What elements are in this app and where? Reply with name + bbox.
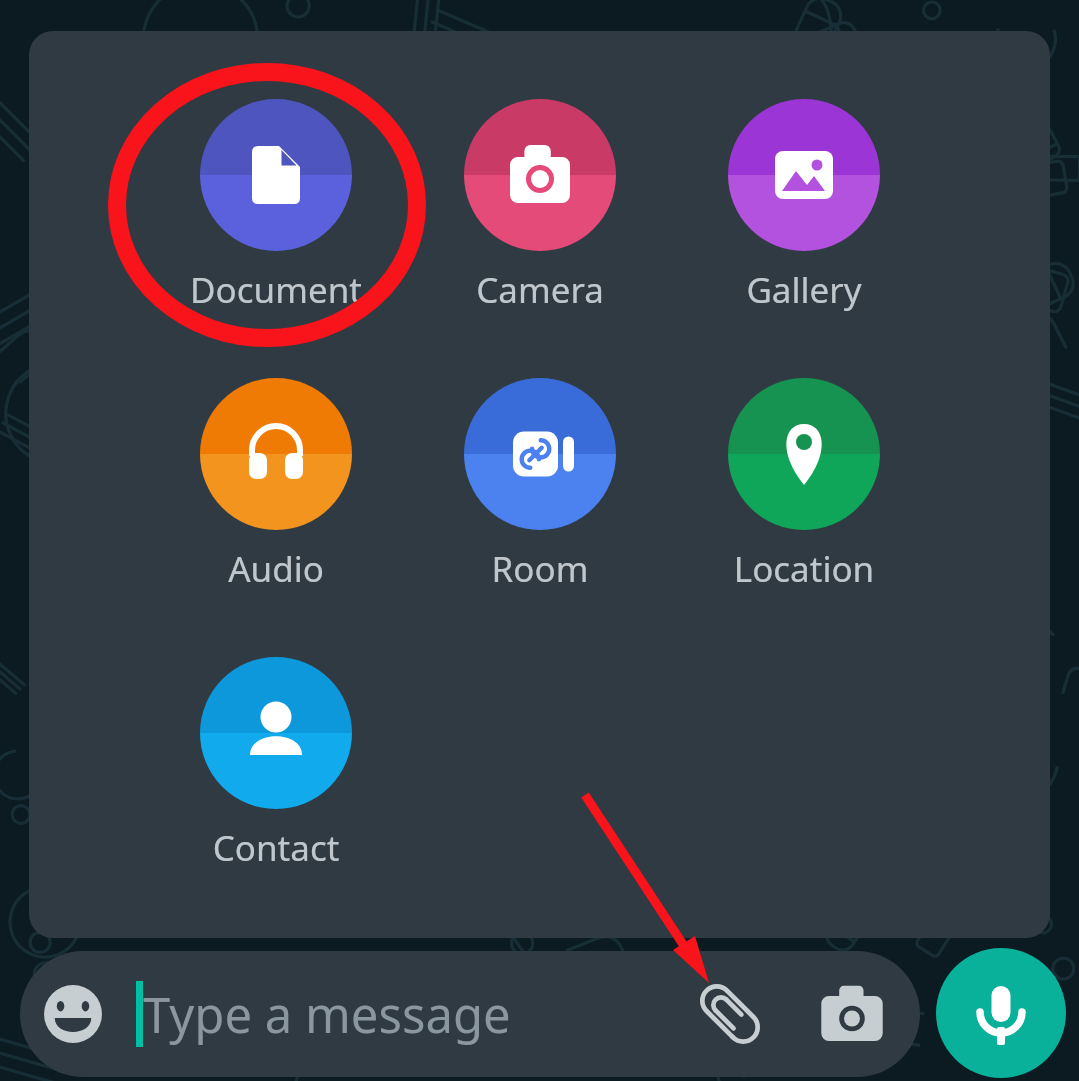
button[interactable]: Voice message [936, 948, 1066, 1078]
button[interactable]: Emoji [44, 985, 102, 1043]
button[interactable]: Room [430, 353, 650, 628]
staticText: Camera [430, 266, 650, 314]
button[interactable]: Gallery [694, 74, 914, 349]
staticText: Type a message [143, 981, 511, 1048]
staticText: Location [694, 545, 914, 593]
staticText: Contact [166, 824, 386, 872]
staticText: Document [166, 266, 386, 314]
button[interactable]: Camera [820, 982, 884, 1046]
button[interactable]: Emoji [20, 951, 920, 1077]
staticText: Gallery [694, 266, 914, 314]
staticText: Room [430, 545, 650, 593]
staticText: Audio [166, 545, 386, 593]
button[interactable]: Attach [696, 980, 764, 1048]
button[interactable]: Location [694, 353, 914, 628]
button[interactable]: Camera [430, 74, 650, 349]
button[interactable]: Audio [166, 353, 386, 628]
button[interactable]: Document [166, 74, 386, 349]
button[interactable]: Contact [166, 632, 386, 907]
